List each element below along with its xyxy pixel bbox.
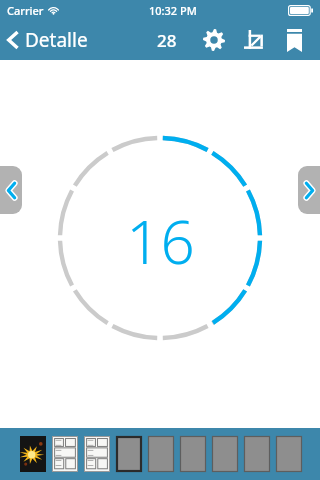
staticText: 10:32 PM bbox=[149, 3, 197, 18]
button[interactable]: Page 5 bbox=[148, 436, 174, 472]
button[interactable]: Crop bbox=[237, 23, 271, 57]
staticText: Carrier bbox=[7, 3, 44, 18]
button[interactable]: Page 8 bbox=[244, 436, 270, 472]
button[interactable]: Bookmark bbox=[277, 23, 311, 57]
button[interactable]: Page 1 bbox=[20, 436, 46, 472]
button[interactable]: Page 7 bbox=[212, 436, 238, 472]
button[interactable]: Page 2 bbox=[52, 436, 78, 472]
button[interactable]: Page 9 bbox=[276, 436, 302, 472]
button[interactable]: 28 bbox=[149, 20, 185, 60]
staticText: Detalle bbox=[25, 27, 88, 53]
button[interactable]: Settings bbox=[197, 23, 231, 57]
button[interactable]: Page 3 bbox=[84, 436, 110, 472]
button[interactable]: Page 4 bbox=[116, 436, 142, 472]
button[interactable]: Detalle bbox=[0, 20, 98, 60]
button[interactable]: Next bbox=[298, 166, 320, 214]
button[interactable]: Previous bbox=[0, 166, 22, 214]
button[interactable]: Page 6 bbox=[180, 436, 206, 472]
staticText: 28 bbox=[157, 29, 177, 52]
staticText: 16 bbox=[126, 200, 195, 282]
